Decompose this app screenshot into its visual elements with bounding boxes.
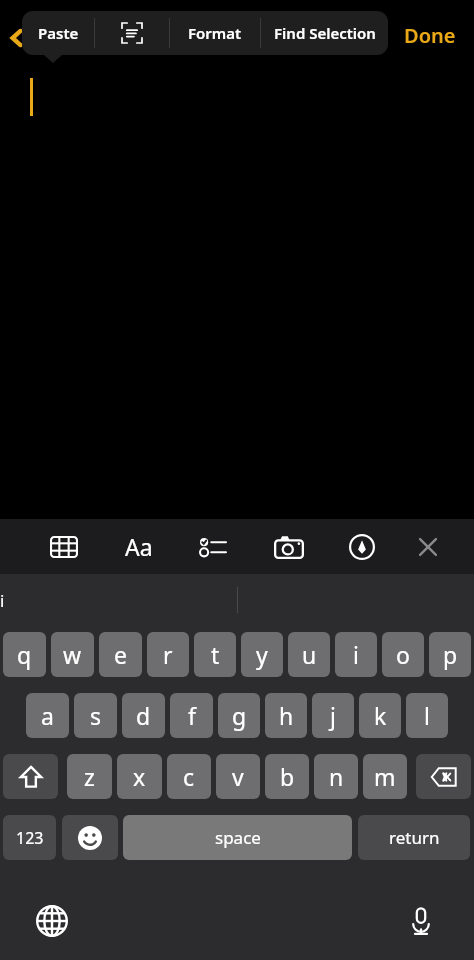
staticText: w [63,639,82,670]
staticText: t [211,639,220,670]
button[interactable]: e [99,632,142,677]
staticText: b [280,761,295,792]
button[interactable]: a [26,693,69,738]
button[interactable]: l [406,693,448,738]
button[interactable]: Change Keyboard [28,897,76,945]
button[interactable]: Dictation [397,897,445,945]
button[interactable]: o [382,632,424,677]
staticText: y [256,639,268,670]
staticText: return [389,826,440,849]
button[interactable]: b [265,754,309,799]
staticText: m [374,761,396,792]
button[interactable]: Shift [3,754,58,799]
button[interactable]: Paste [22,11,94,55]
button[interactable]: d [122,693,165,738]
button[interactable]: j [312,693,354,738]
staticText: Paste [38,23,79,43]
button[interactable]: u [288,632,330,677]
button[interactable]: y [241,632,283,677]
button[interactable]: Scan Text [95,11,169,55]
button[interactable]: space [123,815,352,860]
staticText: 123 [16,827,44,849]
staticText: g [232,700,247,731]
button[interactable]: k [359,693,401,738]
button[interactable]: Text Format [113,519,165,574]
button[interactable]: Find Selection [261,11,388,55]
button[interactable]: Emoji [62,815,118,860]
button[interactable]: z [67,754,112,799]
staticText: f [188,700,196,731]
staticText: v [232,761,244,792]
button[interactable]: q [3,632,46,677]
staticText: l [424,700,430,731]
staticText: z [84,761,95,792]
button[interactable]: r [147,632,189,677]
button[interactable]: return [358,815,470,860]
button[interactable]: Markup [336,519,388,574]
button[interactable]: i [335,632,377,677]
staticText: r [163,639,173,670]
button[interactable]: Checklist [187,519,239,574]
button[interactable]: w [51,632,94,677]
button[interactable]: Table [38,519,90,574]
button[interactable]: 123 [3,815,56,860]
staticText: Format [188,23,242,43]
button[interactable]: Format [170,11,260,55]
staticText: q [17,639,32,670]
staticText: i [353,639,359,670]
staticText: j [330,700,336,731]
staticText: Find Selection [274,23,376,43]
staticText: h [279,700,294,731]
button[interactable]: h [265,693,307,738]
staticText: d [136,700,151,731]
button[interactable]: t [194,632,236,677]
staticText: c [183,761,195,792]
button[interactable]: v [216,754,260,799]
button[interactable]: Back [2,23,32,53]
button[interactable]: Camera [263,519,315,574]
staticText: u [302,639,317,670]
button[interactable]: Done [404,22,456,49]
staticText: e [114,639,127,670]
staticText: Aa [125,531,153,562]
button[interactable]: p [429,632,471,677]
staticText: o [396,639,410,670]
button[interactable]: Backspace [416,754,471,799]
button[interactable]: c [167,754,211,799]
staticText: s [90,700,102,731]
staticText: Done [404,22,456,49]
button[interactable]: Close Keyboard [402,519,454,574]
staticText: space [215,826,261,849]
staticText: p [443,639,458,670]
button[interactable]: m [363,754,407,799]
button[interactable]: s [74,693,117,738]
staticText: x [133,761,146,792]
staticText: k [374,700,387,731]
staticText: n [329,761,344,792]
button[interactable]: g [218,693,260,738]
button[interactable]: n [314,754,358,799]
staticText: a [41,700,54,731]
button[interactable]: x [117,754,162,799]
button[interactable]: f [170,693,213,738]
